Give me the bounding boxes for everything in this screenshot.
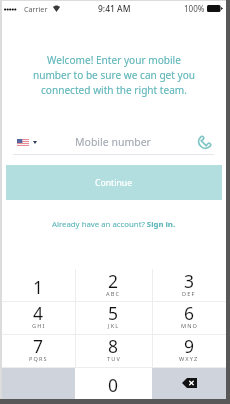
- staticText: TUV: [107, 355, 121, 363]
- button[interactable]: 1: [2, 269, 75, 301]
- button[interactable]: 4: [2, 301, 75, 334]
- button[interactable]: 0: [75, 367, 152, 399]
- staticText: 3: [184, 269, 195, 293]
- staticText: Welcome! Enter your mobile number to be …: [30, 53, 198, 97]
- staticText: WXYZ: [179, 355, 199, 363]
- staticText: Carrier: [24, 4, 48, 14]
- staticText: 100%: [184, 3, 205, 14]
- button[interactable]: Already have an account? Sign in.: [52, 219, 176, 230]
- button[interactable]: Continue: [6, 165, 222, 200]
- button[interactable]: 6: [152, 301, 226, 334]
- button[interactable]: 3: [152, 269, 226, 301]
- staticText: 0: [108, 373, 119, 397]
- button[interactable]: 8: [75, 334, 152, 367]
- staticText: 7: [33, 334, 44, 358]
- button[interactable]: 2: [75, 269, 152, 301]
- staticText: 1: [33, 275, 44, 299]
- button[interactable]: 7: [2, 334, 75, 367]
- staticText: Mobile number: [75, 135, 151, 149]
- button[interactable]: Delete: [152, 367, 226, 399]
- button[interactable]: Call: [198, 137, 210, 149]
- button[interactable]: 9: [152, 334, 226, 367]
- button[interactable]: Select country code: [17, 139, 37, 146]
- staticText: 5: [108, 301, 119, 325]
- staticText: 2: [108, 269, 119, 293]
- staticText: DEF: [182, 290, 196, 298]
- staticText: 9:41 AM: [98, 3, 131, 15]
- staticText: Continue: [95, 177, 133, 189]
- staticText: ABC: [106, 290, 121, 298]
- staticText: 6: [184, 301, 195, 325]
- button[interactable]: [2, 367, 75, 399]
- staticText: 4: [33, 301, 44, 325]
- staticText: GHI: [32, 322, 46, 330]
- staticText: JKL: [108, 322, 120, 330]
- staticText: MNO: [181, 322, 198, 330]
- button[interactable]: 5: [75, 301, 152, 334]
- staticText: PQRS: [29, 355, 48, 363]
- staticText: 8: [108, 334, 119, 358]
- staticText: 9: [184, 334, 195, 358]
